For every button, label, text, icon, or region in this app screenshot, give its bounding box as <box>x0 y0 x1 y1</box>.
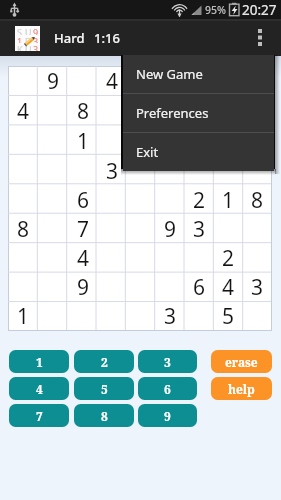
button[interactable] <box>156 126 185 156</box>
button[interactable] <box>38 96 68 126</box>
button[interactable] <box>127 244 156 273</box>
button[interactable] <box>38 156 68 186</box>
button[interactable] <box>214 66 243 96</box>
button[interactable]: 4 <box>214 273 243 302</box>
button[interactable] <box>156 186 185 215</box>
button[interactable]: 4 <box>9 377 69 400</box>
button[interactable] <box>98 273 127 302</box>
button[interactable] <box>8 186 38 215</box>
button[interactable]: 8 <box>74 404 134 427</box>
button[interactable] <box>185 126 214 156</box>
button[interactable] <box>185 96 214 126</box>
button[interactable] <box>127 186 156 215</box>
button[interactable]: 5 <box>214 302 243 331</box>
staticText: 8 <box>251 186 264 215</box>
button[interactable]: 1 <box>68 126 98 156</box>
button[interactable] <box>243 66 272 96</box>
button[interactable] <box>38 302 68 331</box>
button[interactable] <box>98 302 127 331</box>
staticText: 3 <box>164 302 177 331</box>
button[interactable]: erase <box>211 350 272 373</box>
button[interactable] <box>98 186 127 215</box>
button[interactable] <box>214 215 243 244</box>
button[interactable]: 1 <box>214 186 243 215</box>
button[interactable] <box>8 244 38 273</box>
button[interactable] <box>156 273 185 302</box>
button[interactable]: Preferences <box>123 94 274 132</box>
button[interactable] <box>243 302 272 331</box>
button[interactable] <box>156 96 185 126</box>
button[interactable] <box>127 156 156 186</box>
button[interactable]: 7 <box>9 404 69 427</box>
button[interactable] <box>38 244 68 273</box>
button[interactable]: 2 <box>74 350 134 373</box>
button[interactable] <box>243 215 272 244</box>
button[interactable]: 8 <box>243 186 272 215</box>
button[interactable]: 3 <box>243 273 272 302</box>
button[interactable]: More options <box>245 19 275 56</box>
button[interactable] <box>8 156 38 186</box>
button[interactable]: 4 <box>8 96 38 126</box>
staticText: New Game <box>136 65 203 83</box>
button[interactable] <box>185 156 214 186</box>
button[interactable] <box>68 66 98 96</box>
button[interactable]: New Game <box>123 55 274 93</box>
button[interactable] <box>156 66 185 96</box>
button[interactable] <box>185 244 214 273</box>
button[interactable] <box>98 244 127 273</box>
button[interactable] <box>243 244 272 273</box>
button[interactable] <box>156 156 185 186</box>
staticText: Preferences <box>136 104 209 122</box>
button[interactable] <box>127 273 156 302</box>
button[interactable] <box>185 302 214 331</box>
button[interactable]: 9 <box>38 66 68 96</box>
button[interactable] <box>98 215 127 244</box>
button[interactable] <box>185 66 214 96</box>
button[interactable]: 9 <box>68 273 98 302</box>
button[interactable]: 6 <box>185 273 214 302</box>
button[interactable] <box>68 302 98 331</box>
button[interactable] <box>127 66 156 96</box>
button[interactable] <box>156 244 185 273</box>
button[interactable] <box>243 126 272 156</box>
button[interactable] <box>214 126 243 156</box>
button[interactable]: 4 <box>98 66 127 96</box>
button[interactable] <box>68 156 98 186</box>
button[interactable]: 9 <box>156 215 185 244</box>
button[interactable] <box>127 96 156 126</box>
button[interactable]: 1 <box>8 302 38 331</box>
button[interactable]: help <box>211 377 272 400</box>
button[interactable]: 4 <box>68 244 98 273</box>
button[interactable]: 9 <box>138 404 197 427</box>
button[interactable]: 1 <box>9 350 69 373</box>
button[interactable]: 3 <box>185 215 214 244</box>
button[interactable] <box>38 273 68 302</box>
button[interactable] <box>127 215 156 244</box>
button[interactable] <box>214 156 243 186</box>
button[interactable] <box>8 66 38 96</box>
button[interactable]: 6 <box>138 377 197 400</box>
button[interactable] <box>38 126 68 156</box>
button[interactable] <box>243 156 272 186</box>
button[interactable]: 5 <box>74 377 134 400</box>
button[interactable]: 3 <box>156 302 185 331</box>
button[interactable]: 6 <box>68 186 98 215</box>
button[interactable]: Exit <box>123 133 274 171</box>
button[interactable] <box>127 126 156 156</box>
button[interactable]: 8 <box>8 215 38 244</box>
button[interactable]: 2 <box>214 244 243 273</box>
button[interactable] <box>98 126 127 156</box>
button[interactable] <box>38 215 68 244</box>
button[interactable]: 3 <box>138 350 197 373</box>
button[interactable]: 7 <box>68 215 98 244</box>
button[interactable] <box>98 96 127 126</box>
button[interactable] <box>8 126 38 156</box>
button[interactable]: 3 <box>98 156 127 186</box>
button[interactable] <box>8 273 38 302</box>
button[interactable] <box>127 302 156 331</box>
button[interactable]: 8 <box>68 96 98 126</box>
button[interactable]: 2 <box>185 186 214 215</box>
button[interactable] <box>38 186 68 215</box>
